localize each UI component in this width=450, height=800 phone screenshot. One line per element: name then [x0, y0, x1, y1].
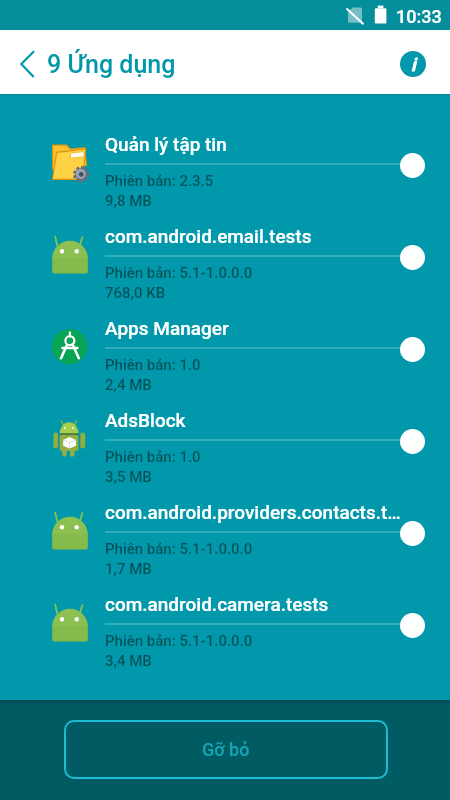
button[interactable]: Chọn — [400, 337, 425, 362]
staticText: Quản lý tập tin — [105, 133, 227, 155]
staticText: 3,5 MB — [105, 468, 152, 486]
staticText: com.android.camera.tests — [105, 593, 329, 615]
staticText: 10:33 — [396, 6, 442, 27]
staticText: 3,4 MB — [105, 652, 152, 670]
button[interactable]: AdsBlock — [0, 394, 450, 486]
staticText: com.android.email.tests — [105, 225, 312, 247]
staticText: 768,0 KB — [105, 284, 166, 302]
staticText: i — [411, 54, 416, 75]
staticText: 2,4 MB — [105, 376, 152, 394]
button[interactable]: com.android.camera.tests — [0, 578, 450, 670]
button[interactable]: Chọn — [400, 521, 425, 546]
button[interactable]: Chọn — [400, 153, 425, 178]
button[interactable]: com.android.providers.contacts.tests — [0, 486, 450, 578]
button[interactable]: com.android.email.tests — [0, 210, 450, 302]
staticText: Apps Manager — [105, 317, 229, 339]
button[interactable]: Quản lý tập tin — [0, 118, 450, 210]
button[interactable]: Thông tin — [400, 51, 426, 77]
staticText: Phiên bản: 1.0 — [105, 448, 201, 466]
staticText: AdsBlock — [105, 409, 186, 431]
staticText: Phiên bản: 2.3.5 — [105, 172, 214, 190]
staticText: 1,7 MB — [105, 560, 152, 578]
button[interactable]: Gỡ bỏ — [64, 720, 388, 779]
staticText: Phiên bản: 5.1-1.0.0.0 — [105, 632, 253, 650]
staticText: 9,8 MB — [105, 192, 152, 210]
staticText: Phiên bản: 1.0 — [105, 356, 201, 374]
staticText: Phiên bản: 5.1-1.0.0.0 — [105, 540, 253, 558]
staticText: Phiên bản: 5.1-1.0.0.0 — [105, 264, 253, 282]
staticText: com.android.providers.contacts.tests — [105, 501, 402, 523]
button[interactable]: Apps Manager — [0, 302, 450, 394]
button[interactable]: Quay lại — [6, 48, 36, 78]
button[interactable]: Chọn — [400, 429, 425, 454]
staticText: 9 Ứng dụng — [47, 50, 176, 79]
staticText: Gỡ bỏ — [202, 739, 250, 760]
button[interactable]: Chọn — [400, 245, 425, 270]
button[interactable]: Chọn — [400, 613, 425, 638]
